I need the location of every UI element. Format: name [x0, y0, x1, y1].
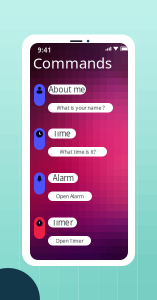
staticText: 9:41	[37, 45, 51, 54]
button[interactable]: About me	[48, 84, 86, 94]
staticText: Timer	[52, 217, 73, 228]
button[interactable]: Open Alarm	[48, 191, 92, 201]
staticText: Open Timer	[55, 237, 83, 244]
staticText: Commands	[33, 53, 112, 72]
button[interactable]: What is your name ?	[48, 103, 113, 112]
button[interactable]: Alarm	[48, 173, 78, 183]
staticText: What is your name ?	[56, 104, 104, 111]
staticText: What time is it?	[59, 148, 95, 155]
button[interactable]: About me	[34, 84, 45, 106]
staticText: Time	[53, 128, 71, 139]
button[interactable]: Open Timer	[48, 236, 91, 245]
staticText: About me	[48, 84, 85, 95]
button[interactable]: Alarm	[34, 172, 45, 194]
button[interactable]: Timer	[34, 217, 45, 239]
staticText: Open Alarm	[56, 193, 84, 200]
button[interactable]: Time	[48, 128, 76, 138]
button[interactable]: Time	[34, 128, 45, 150]
button[interactable]: Timer	[48, 217, 77, 227]
staticText: Alarm	[52, 173, 73, 183]
button[interactable]: What time is it?	[48, 147, 107, 156]
